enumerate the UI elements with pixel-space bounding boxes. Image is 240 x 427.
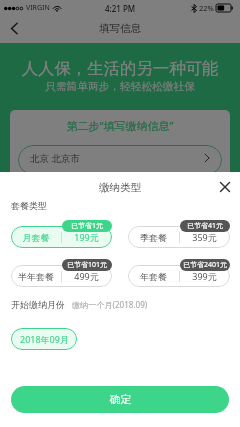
- staticText: 已节省2401元: [183, 260, 228, 270]
- staticText: 北京 北京市: [30, 152, 80, 165]
- staticText: 399元: [179, 270, 230, 282]
- staticText: 套餐类型: [11, 200, 47, 211]
- staticText: VIRGIN: [26, 3, 50, 13]
- button[interactable]: 2018年09月: [11, 328, 77, 350]
- staticText: 缴纳一个月(2018.09): [72, 299, 148, 310]
- button[interactable]: 确定: [11, 386, 229, 413]
- button[interactable]: 年套餐: [128, 265, 230, 287]
- staticText: 人人保，生活的另一种可能: [0, 58, 240, 79]
- button[interactable]: 北京 北京市: [18, 145, 222, 175]
- staticText: 4:21 PM: [0, 3, 240, 14]
- staticText: 已节省1元: [71, 221, 104, 231]
- staticText: 缴纳类型: [0, 181, 240, 194]
- staticText: 年套餐: [128, 271, 179, 282]
- button[interactable]: 月套餐: [11, 226, 112, 248]
- staticText: 季套餐: [128, 232, 179, 243]
- staticText: 开始缴纳月份: [11, 299, 65, 310]
- staticText: 只需简单两步，轻轻松松缴社保: [0, 80, 240, 93]
- staticText: 月套餐: [11, 232, 61, 243]
- staticText: 22%: [199, 3, 214, 13]
- button[interactable]: Close: [216, 178, 234, 196]
- staticText: 已节省101元: [67, 260, 108, 270]
- staticText: 2018年09月: [20, 333, 69, 345]
- staticText: 359元: [179, 231, 230, 243]
- button[interactable]: Back: [4, 19, 23, 38]
- staticText: 填写信息: [0, 22, 240, 35]
- staticText: 半年套餐: [11, 271, 61, 282]
- button[interactable]: 半年套餐: [11, 265, 112, 287]
- button[interactable]: 季套餐: [128, 226, 230, 248]
- staticText: 已节省41元: [187, 221, 224, 231]
- staticText: 499元: [61, 270, 112, 282]
- staticText: 确定: [110, 393, 131, 406]
- staticText: 199元: [61, 231, 112, 243]
- staticText: 第二步“填写缴纳信息”: [10, 118, 230, 133]
